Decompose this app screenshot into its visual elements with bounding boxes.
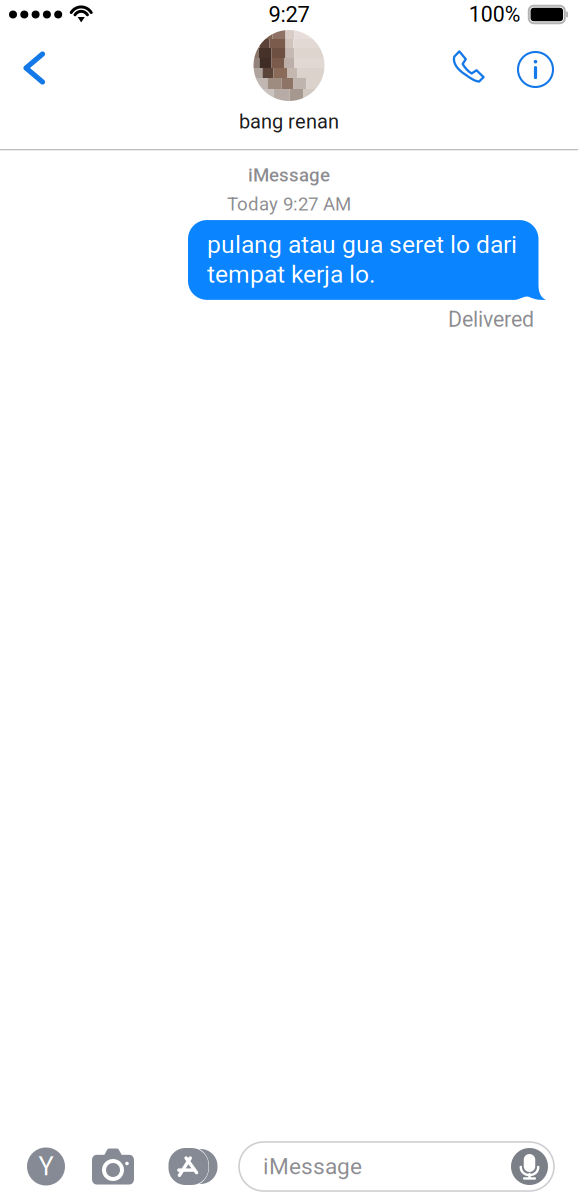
button[interactable]: Back [0,31,67,108]
button[interactable]: Apps [27,1147,65,1185]
button[interactable]: Camera [92,1147,134,1185]
staticText: iMessage [263,1153,362,1180]
button[interactable]: Call [446,29,506,110]
button[interactable]: App Store [164,1147,213,1185]
button[interactable]: Details [506,29,578,110]
staticText: Delivered [448,307,534,332]
staticText: Today 9:27 AM [227,193,351,215]
staticText: 9:27 [268,2,309,27]
staticText: Y [38,1152,53,1181]
button[interactable]: iMessage [239,1142,554,1191]
staticText: bang renan [239,110,339,133]
staticText: iMessage [248,164,330,186]
staticText: 100% [469,2,521,27]
staticText: pulang atau gua seret lo dari tempat ker… [207,230,517,289]
